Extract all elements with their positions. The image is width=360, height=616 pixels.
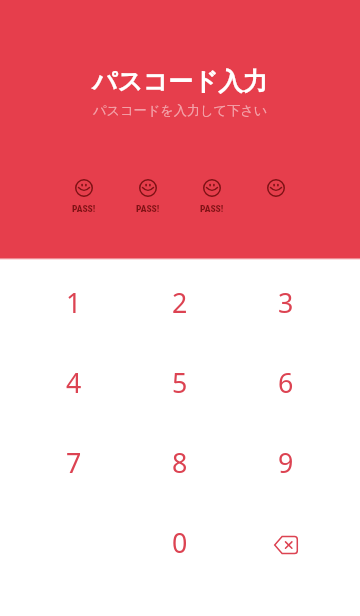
button[interactable]: 2 — [127, 262, 233, 342]
staticText: 5 — [172, 364, 188, 401]
button[interactable]: 6 — [233, 342, 339, 422]
staticText: 6 — [278, 364, 294, 401]
staticText: PASS! — [200, 203, 224, 214]
staticText: 7 — [66, 444, 82, 481]
button[interactable]: 5 — [127, 342, 233, 422]
staticText: 2 — [172, 284, 188, 321]
staticText: 3 — [278, 284, 294, 321]
button[interactable]: 8 — [127, 422, 233, 502]
button[interactable]: 1 — [21, 262, 127, 342]
button[interactable]: Backspace — [233, 502, 339, 582]
staticText: 4 — [66, 364, 82, 401]
staticText: 0 — [172, 524, 188, 561]
staticText: パスコード入力 — [92, 66, 268, 97]
button[interactable]: 3 — [233, 262, 339, 342]
staticText: パスコードを入力して下さい — [93, 102, 268, 119]
staticText: PASS! — [72, 203, 96, 214]
button[interactable]: 9 — [233, 422, 339, 502]
staticText: 1 — [66, 284, 82, 321]
button[interactable]: 4 — [21, 342, 127, 422]
staticText: 9 — [278, 444, 294, 481]
staticText: PASS! — [136, 203, 160, 214]
button[interactable]: 0 — [127, 502, 233, 582]
staticText: 8 — [172, 444, 188, 481]
button[interactable]: 7 — [21, 422, 127, 502]
